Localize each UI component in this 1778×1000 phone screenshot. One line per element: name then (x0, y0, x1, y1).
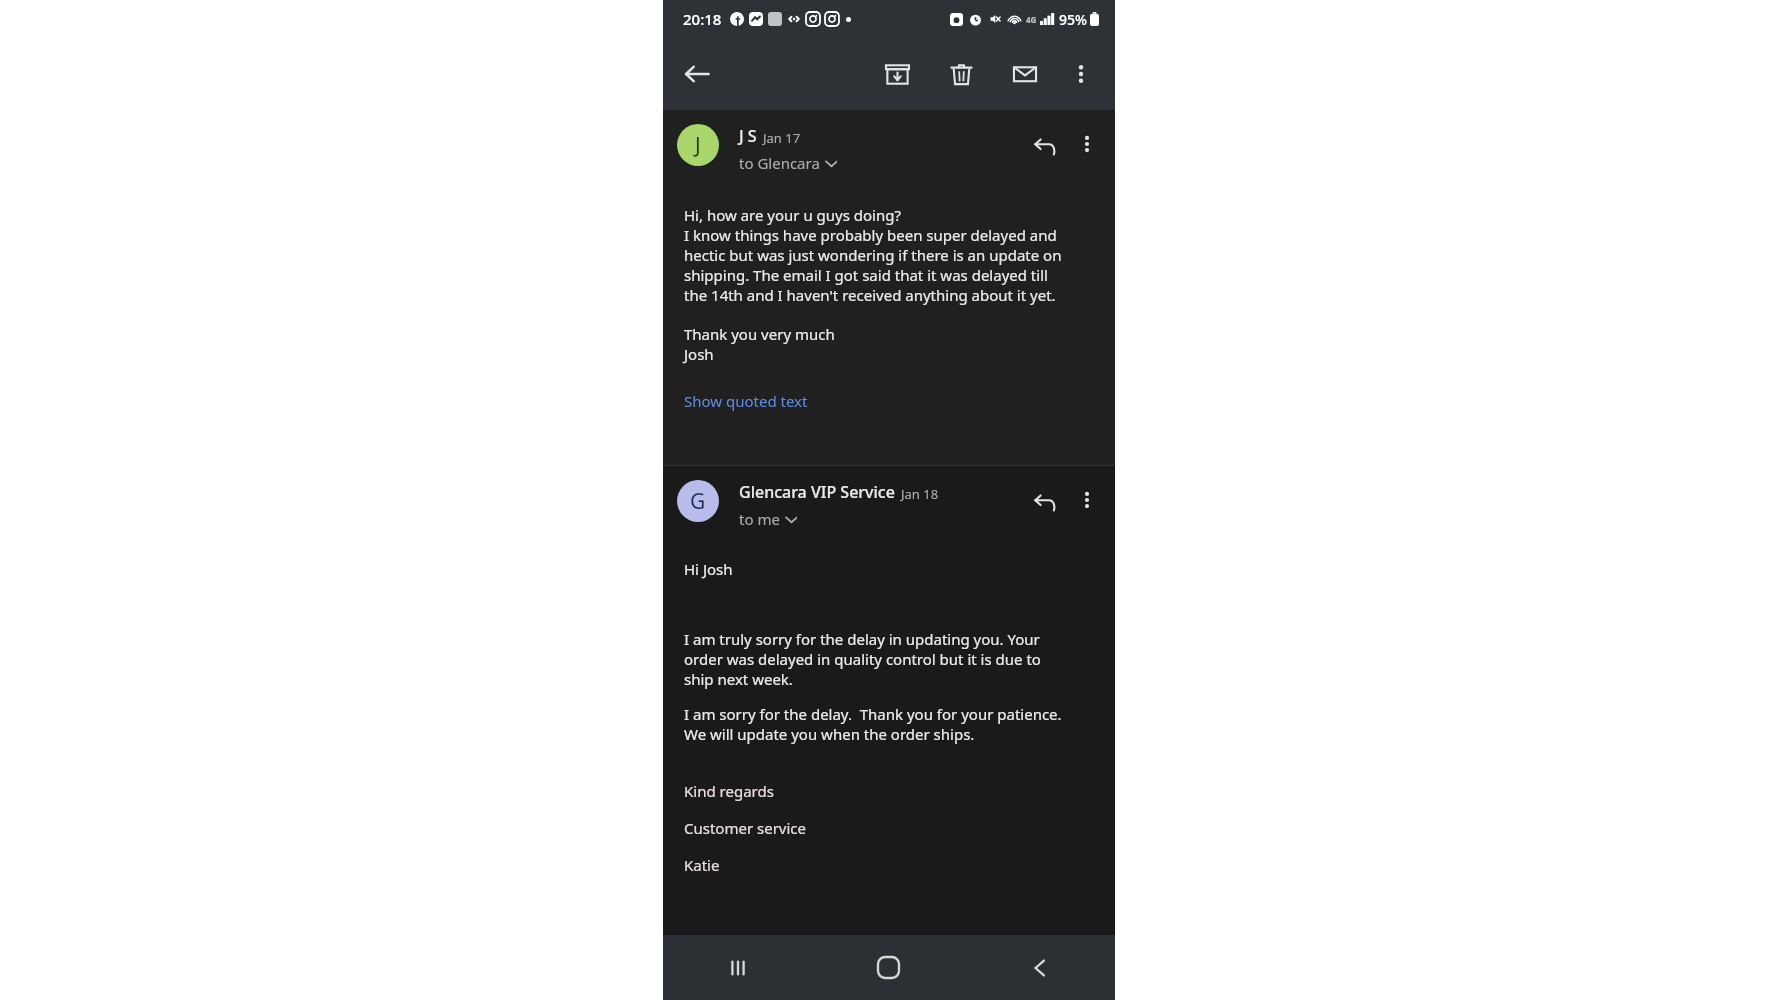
button[interactable]: Delete (937, 50, 985, 98)
button[interactable]: to me (739, 509, 797, 529)
staticText: 20:18 (683, 9, 722, 29)
button[interactable]: G (677, 480, 719, 522)
staticText: Customer service (684, 818, 806, 838)
staticText: Katie (684, 855, 720, 875)
staticText: Jan 17 (763, 129, 801, 147)
staticText: I am sorry for the delay. Thank you for … (684, 704, 1062, 744)
button[interactable]: Home (813, 935, 964, 1000)
staticText: 95% (1059, 10, 1087, 29)
staticText: Hi Josh (684, 559, 733, 579)
staticText: J (695, 131, 701, 160)
button[interactable]: to Glencara (739, 153, 837, 173)
staticText: G (690, 487, 706, 516)
button[interactable]: More options (1067, 124, 1107, 164)
button[interactable]: Back (673, 50, 721, 98)
staticText: Thank you very much Josh (684, 324, 835, 364)
staticText: Jan 18 (901, 485, 939, 503)
button[interactable]: More options (1057, 50, 1105, 98)
staticText: 4G (1026, 14, 1037, 25)
button[interactable]: Archive (873, 50, 921, 98)
button[interactable]: More options (1067, 480, 1107, 520)
button[interactable]: Reply (1023, 480, 1067, 524)
button[interactable]: Recent apps (663, 935, 813, 1000)
staticText: Glencara VIP Service (739, 481, 895, 503)
staticText: to Glencara (739, 153, 820, 173)
button[interactable]: Reply (1023, 124, 1067, 168)
staticText: Hi, how are your u guys doing? I know th… (684, 205, 1062, 305)
staticText: Show quoted text (684, 391, 808, 411)
button[interactable]: J (677, 124, 719, 166)
button[interactable]: Show quoted text (684, 391, 808, 411)
staticText: to me (739, 509, 780, 529)
staticText: Kind regards (684, 781, 774, 801)
staticText: I am truly sorry for the delay in updati… (684, 629, 1041, 689)
button[interactable]: Mark as unread (1001, 50, 1049, 98)
button[interactable]: Back (964, 935, 1115, 1000)
staticText: J S (739, 125, 757, 147)
